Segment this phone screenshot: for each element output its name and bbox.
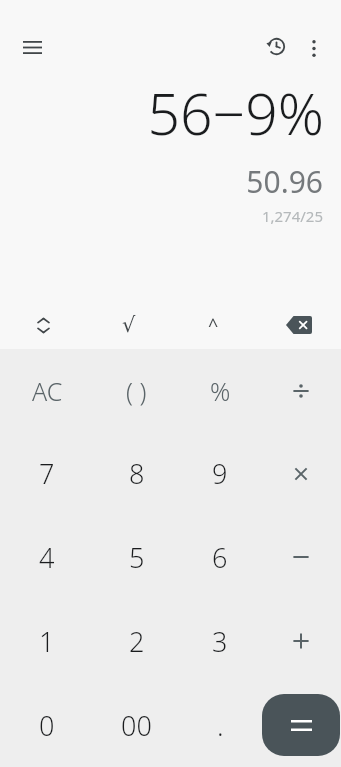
staticText: ^: [208, 313, 219, 338]
staticText: 6: [212, 539, 228, 576]
button[interactable]: Plus: [261, 599, 341, 683]
staticText: .: [217, 707, 224, 744]
staticText: 1: [39, 623, 55, 660]
button[interactable]: %: [179, 349, 261, 432]
button[interactable]: 6: [179, 515, 261, 599]
staticText: 0: [39, 707, 55, 744]
staticText: 7: [39, 455, 55, 492]
button[interactable]: Menu: [13, 28, 51, 66]
button[interactable]: 0: [0, 683, 94, 767]
staticText: 3: [212, 623, 228, 660]
staticText: 4: [39, 539, 55, 576]
button[interactable]: 5: [94, 515, 179, 599]
staticText: 50.96: [246, 161, 323, 202]
button[interactable]: Square root: [86, 301, 171, 349]
button[interactable]: Equals: [262, 694, 340, 756]
button[interactable]: Divide: [261, 349, 341, 432]
staticText: 56−9%: [147, 74, 324, 152]
button[interactable]: .: [179, 683, 261, 767]
button[interactable]: ( ): [94, 349, 179, 432]
button[interactable]: 9: [179, 432, 261, 515]
staticText: AC: [32, 374, 63, 408]
button[interactable]: 7: [0, 432, 94, 515]
staticText: √: [122, 313, 136, 337]
button[interactable]: 1: [0, 599, 94, 683]
button[interactable]: Expand: [0, 301, 86, 349]
button[interactable]: More options: [296, 30, 332, 66]
button[interactable]: 8: [94, 432, 179, 515]
staticText: 2: [129, 623, 145, 660]
button[interactable]: 3: [179, 599, 261, 683]
button[interactable]: 00: [94, 683, 179, 767]
button[interactable]: 2: [94, 599, 179, 683]
button[interactable]: Minus: [261, 515, 341, 599]
button[interactable]: AC: [0, 349, 94, 432]
staticText: 8: [129, 455, 145, 492]
staticText: 1,274/25: [261, 206, 323, 226]
button[interactable]: Multiply: [261, 432, 341, 515]
button[interactable]: Power: [171, 301, 256, 349]
button[interactable]: 4: [0, 515, 94, 599]
button[interactable]: History: [256, 26, 296, 66]
staticText: ( ): [126, 374, 147, 408]
staticText: 9: [212, 455, 228, 492]
staticText: 5: [129, 539, 145, 576]
staticText: %: [210, 374, 231, 408]
staticText: 00: [121, 707, 152, 744]
button[interactable]: Backspace: [256, 301, 341, 349]
